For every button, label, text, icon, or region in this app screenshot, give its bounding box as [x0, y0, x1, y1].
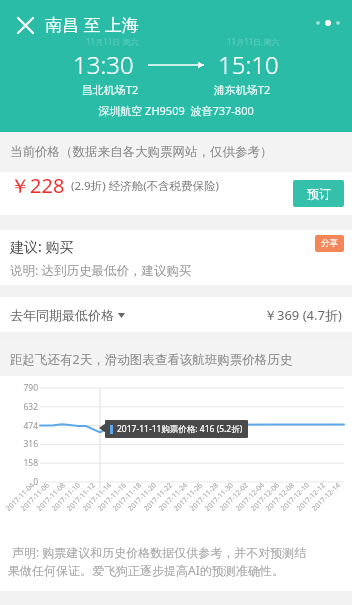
staticText: 分享 [321, 238, 338, 249]
staticText: 2017-11-10 [50, 480, 83, 514]
staticText: ￥228 [10, 172, 65, 199]
staticText: 建议: 购买 [10, 237, 74, 256]
staticText: 去年同期最低价格 [10, 307, 114, 323]
staticText: 2017-12-04 [234, 480, 267, 514]
staticText: 2017-12-06 [249, 480, 282, 514]
staticText: 2017-11-24 [157, 480, 190, 514]
button[interactable]: 分享 [315, 235, 344, 252]
staticText: 昌北机场T2 [55, 82, 165, 97]
button[interactable]: More options [312, 10, 344, 36]
staticText: 316 [12, 438, 38, 450]
staticText: 浦东机场T2 [187, 82, 297, 97]
staticText: 当前价格（数据来自各大购票网站，仅供参考） [10, 144, 273, 160]
staticText: 2017-11-18 [111, 480, 144, 514]
staticText: (2.9折) 经济舱(不含税费保险) [71, 178, 220, 194]
staticText: 2017-11-16 [96, 480, 129, 514]
staticText: 2017-11-20 [126, 480, 159, 514]
staticText: 距起飞还有2天，滑动图表查看该航班购票价格历史 [10, 351, 293, 368]
staticText: 790 [12, 382, 38, 394]
staticText: ￥369 (4.7折) [264, 306, 342, 324]
staticText: 2017-11-28 [188, 480, 221, 514]
staticText: 声明: 购票建议和历史价格数据仅供参考，并不对预测结 [12, 544, 307, 560]
staticText: 2017-11-11购票价格: 416 (5.2折) [117, 423, 243, 435]
staticText: 2017-12-02 [218, 480, 251, 514]
staticText: 预订 [307, 186, 331, 201]
staticText: 2017-11-12 [65, 480, 98, 514]
staticText: 632 [12, 401, 38, 413]
staticText: 2017-11-06 [19, 480, 52, 514]
staticText: 2017-11-22 [142, 480, 175, 514]
staticText: 2017-11-04 [4, 480, 37, 514]
staticText: 474 [12, 420, 38, 432]
button[interactable]: Close [10, 10, 40, 40]
staticText: 南昌 至 上海 [45, 13, 139, 36]
button[interactable]: 预订 [293, 180, 344, 207]
staticText: 深圳航空 ZH9509 波音737-800 [0, 103, 352, 118]
staticText: 2017-11-08 [35, 480, 68, 514]
staticText: 果做任何保证。爱飞狗正逐步提高AI的预测准确性。 [8, 562, 284, 578]
staticText: 2017-12-14 [310, 480, 343, 514]
staticText: 2017-11-30 [203, 480, 236, 514]
staticText: 2017-12-08 [264, 480, 297, 514]
staticText: 158 [12, 457, 38, 469]
staticText: 11月11日 周六 [86, 36, 139, 47]
button[interactable]: 去年同期最低价格 [0, 297, 352, 332]
staticText: 2017-12-10 [279, 480, 312, 514]
staticText: 0 [12, 476, 38, 488]
staticText: 15:10 [218, 48, 279, 81]
staticText: 2017-11-26 [172, 480, 205, 514]
staticText: 说明: 达到历史最低价，建议购买 [10, 262, 192, 279]
staticText: 11月11日 周六 [227, 36, 280, 47]
staticText: 2017-11-14 [81, 480, 114, 514]
staticText: 2017-12-12 [295, 480, 328, 514]
staticText: 13:30 [73, 48, 134, 81]
